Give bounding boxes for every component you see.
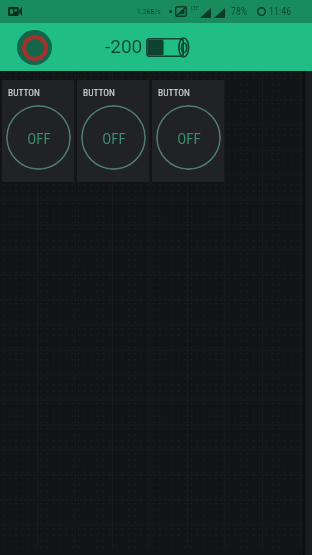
staticText: OFF [177, 130, 201, 148]
staticText: LTE [191, 5, 199, 11]
button[interactable]: OFF [81, 105, 146, 170]
other: Battery [146, 38, 196, 57]
other: Screen recording [8, 7, 22, 16]
button[interactable]: BUTTON [77, 80, 149, 182]
staticText: BUTTON [83, 87, 115, 98]
other: Wi-Fi off [175, 6, 187, 17]
button[interactable]: BUTTON [152, 80, 224, 182]
staticText: OFF [27, 130, 51, 148]
button[interactable]: BUTTON [2, 80, 74, 182]
staticText: 78% [231, 6, 248, 18]
button[interactable]: OFF [6, 105, 71, 170]
button[interactable]: OFF [156, 105, 221, 170]
staticText: 11:46 [269, 6, 292, 18]
other: Mobile signal [200, 8, 211, 18]
staticText: OFF [102, 130, 126, 148]
staticText: 1.2KB/s [137, 7, 161, 16]
staticText: -200 [105, 35, 143, 57]
button[interactable]: Record [17, 30, 52, 65]
other: Mobile signal 2 [214, 8, 225, 18]
staticText: BUTTON [8, 87, 40, 98]
staticText: BUTTON [158, 87, 190, 98]
